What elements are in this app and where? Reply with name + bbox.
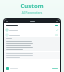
button[interactable]: Edit parameter: [6, 32, 58, 37]
button[interactable]: Selected: [6, 27, 58, 32]
staticText: Custom: [0, 2, 64, 10]
button[interactable]: [6, 23, 58, 27]
button[interactable]: [4, 19, 60, 23]
button[interactable]: [6, 53, 58, 58]
staticText: AI Parameters: [0, 11, 64, 15]
other: Apply preset: [6, 67, 9, 70]
button[interactable]: Apply preset: [6, 66, 58, 71]
other: Selected: [56, 29, 58, 31]
button[interactable]: [6, 38, 58, 50]
